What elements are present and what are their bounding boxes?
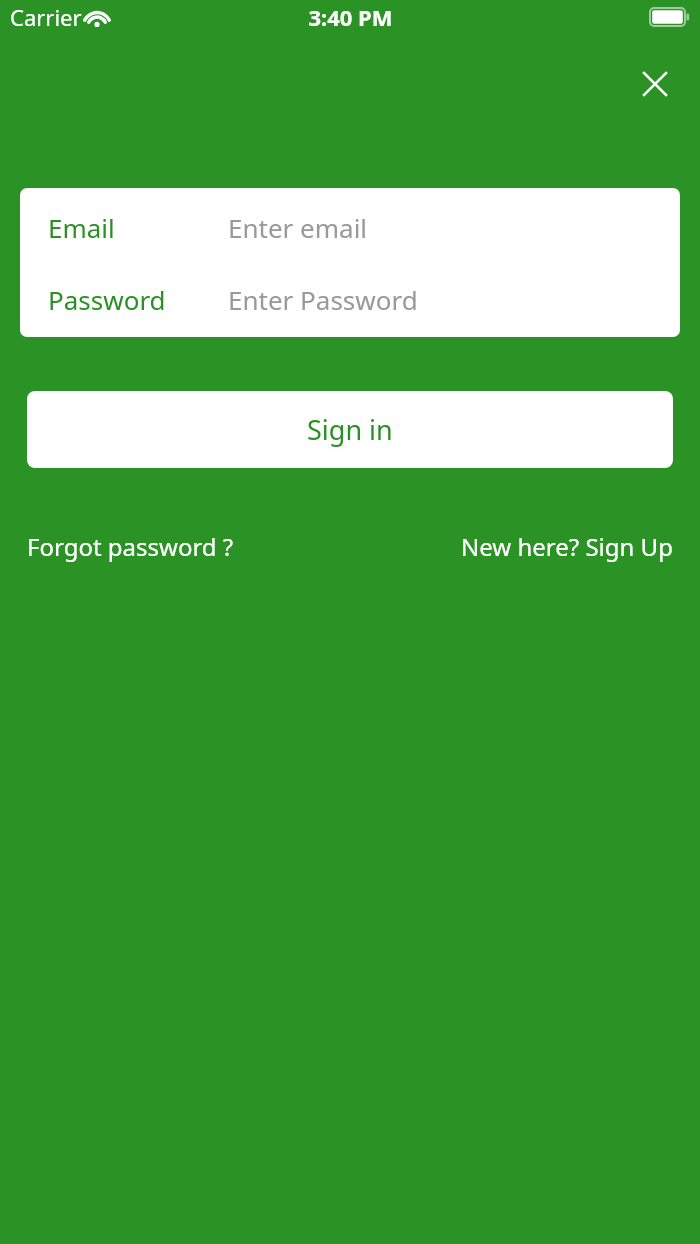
staticText: Enter email: [228, 210, 368, 245]
staticText: Sign in: [307, 411, 393, 448]
staticText: 3:40 PM: [308, 2, 393, 32]
staticText: Password: [48, 282, 166, 317]
staticText: Carrier: [10, 2, 82, 32]
staticText: Enter Password: [228, 282, 418, 317]
button[interactable]: New here? Sign Up: [461, 527, 673, 565]
button[interactable]: Forgot password ?: [27, 527, 234, 565]
button[interactable]: Email: [20, 193, 680, 262]
staticText: Email: [48, 210, 115, 245]
button[interactable]: Close: [631, 60, 679, 108]
staticText: Forgot password ?: [27, 530, 234, 563]
button[interactable]: Sign in: [27, 391, 673, 468]
button[interactable]: Password: [20, 262, 680, 337]
staticText: New here? Sign Up: [461, 530, 673, 563]
